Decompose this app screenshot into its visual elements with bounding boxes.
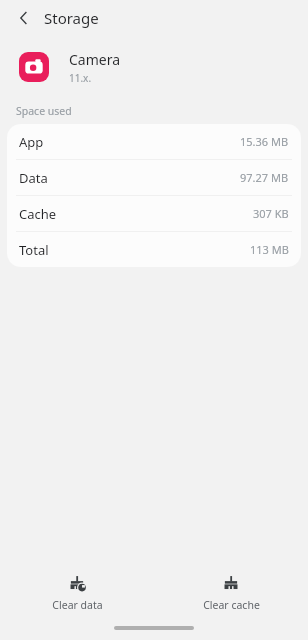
staticText: Clear cache (203, 598, 260, 612)
button[interactable]: Clear data (0, 571, 154, 616)
staticText: Clear data (52, 598, 103, 612)
button[interactable]: Back (10, 4, 38, 32)
button[interactable]: Data (7, 160, 301, 195)
staticText: Total (19, 241, 49, 259)
staticText: 307 KB (253, 206, 289, 221)
staticText: Data (19, 169, 48, 187)
staticText: Space used (16, 104, 72, 118)
staticText: 113 MB (250, 242, 289, 257)
staticText: 15.36 MB (240, 134, 289, 149)
staticText: Camera (69, 50, 121, 69)
staticText: Cache (19, 205, 57, 223)
staticText: 11.x. (69, 71, 92, 85)
staticText: 97.27 MB (240, 170, 289, 185)
button[interactable]: App (7, 124, 301, 159)
button[interactable]: Clear cache (154, 571, 308, 616)
staticText: Storage (44, 8, 99, 28)
staticText: App (19, 133, 44, 151)
button[interactable]: Cache (7, 196, 301, 231)
button[interactable]: Camera (0, 36, 308, 98)
button[interactable]: Total (7, 232, 301, 267)
